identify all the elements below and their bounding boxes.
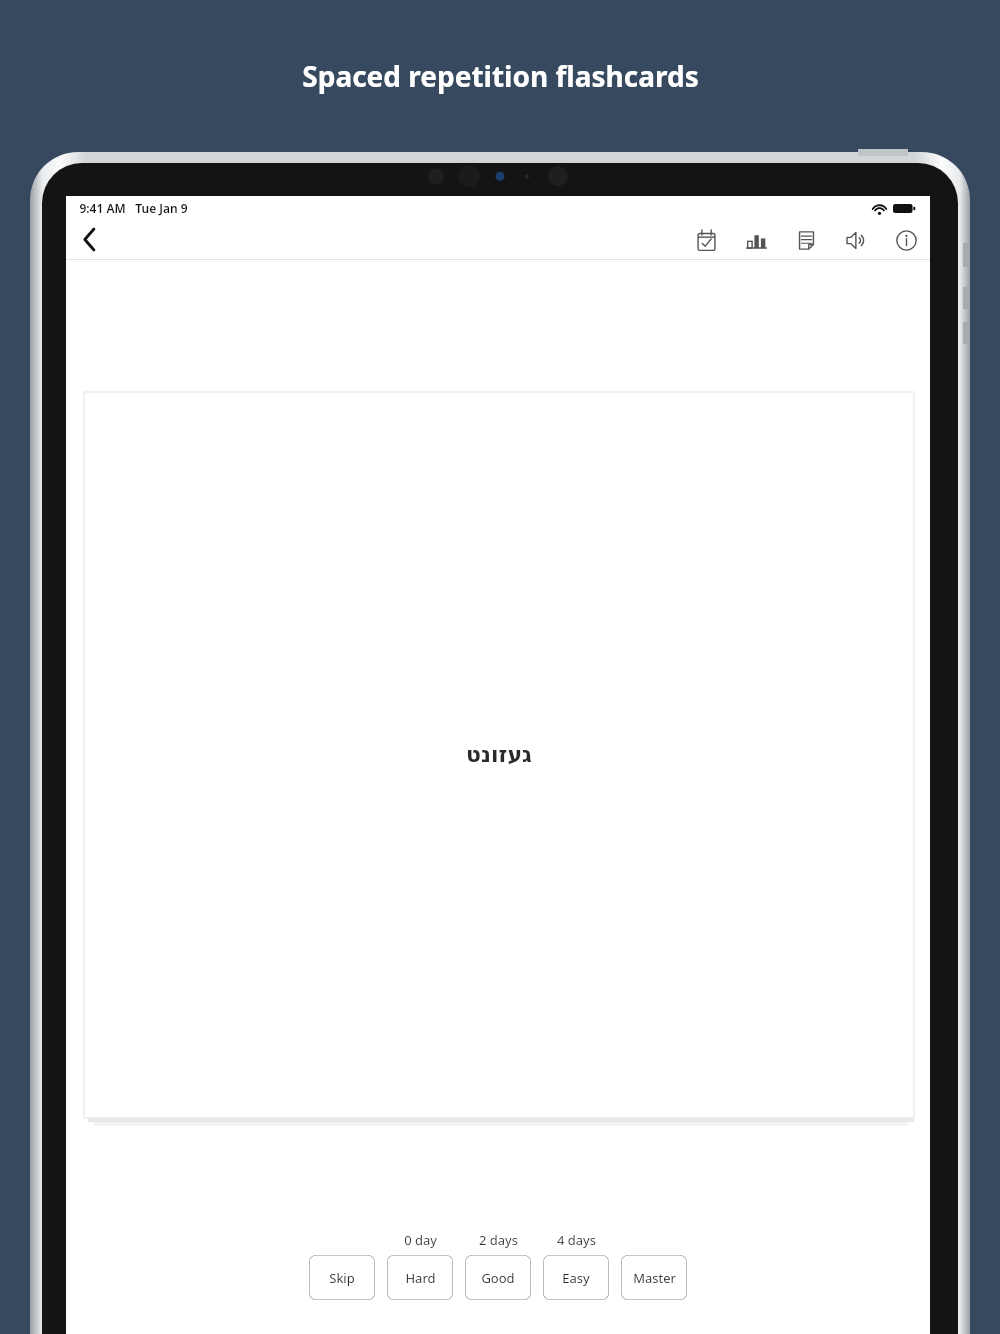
staticText: 0 day [404, 1231, 437, 1249]
button[interactable]: Hard [387, 1255, 453, 1300]
button[interactable]: Info [890, 224, 922, 256]
staticText: 4 days [557, 1231, 596, 1249]
button[interactable]: Sound [840, 224, 872, 256]
staticText: Good [481, 1269, 515, 1287]
staticText: 9:41 AM [79, 200, 126, 216]
staticText: 2 days [479, 1231, 518, 1249]
button[interactable]: Good [465, 1255, 531, 1300]
staticText: Tue Jan 9 [135, 200, 188, 216]
staticText: Skip [329, 1269, 355, 1287]
button[interactable]: Back [66, 220, 112, 259]
staticText: Spaced repetition flashcards [302, 57, 699, 95]
staticText: Hard [405, 1269, 436, 1287]
button[interactable]: Master [621, 1255, 687, 1300]
staticText: Master [633, 1269, 676, 1287]
button[interactable]: Notes [790, 224, 822, 256]
staticText: געזונט [466, 742, 532, 768]
staticText: Easy [562, 1269, 590, 1287]
button[interactable]: Easy [543, 1255, 609, 1300]
button[interactable]: Calendar [690, 224, 722, 256]
button[interactable]: Skip [309, 1255, 375, 1300]
button[interactable]: געזונט [84, 392, 914, 1118]
button[interactable]: Statistics [740, 224, 772, 256]
